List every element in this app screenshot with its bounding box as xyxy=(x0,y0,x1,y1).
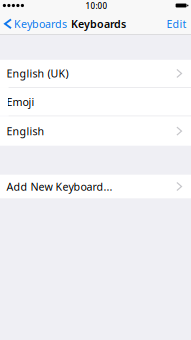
staticText: Add New Keyboard... xyxy=(6,179,112,194)
staticText: Keyboards xyxy=(14,17,67,31)
staticText: 10:00 xyxy=(85,0,107,11)
button[interactable]: English xyxy=(0,116,191,146)
button[interactable]: Add New Keyboard... xyxy=(0,175,191,198)
button[interactable]: Edit xyxy=(166,17,191,31)
staticText: English xyxy=(6,124,44,138)
staticText: Edit xyxy=(166,17,186,31)
button[interactable]: English (UK) xyxy=(0,60,191,87)
staticText: English (UK) xyxy=(6,66,68,81)
button[interactable]: Emoji xyxy=(0,88,191,116)
button[interactable]: Back xyxy=(0,17,67,31)
staticText: Emoji xyxy=(6,95,34,109)
staticText: Keyboards xyxy=(71,17,126,31)
